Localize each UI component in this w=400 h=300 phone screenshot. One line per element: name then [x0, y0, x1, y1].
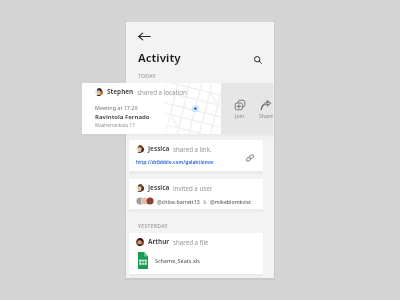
staticText: @chloe.barrett13 [157, 198, 200, 205]
button[interactable]: Join [230, 100, 250, 119]
staticText: shared a link. [173, 145, 212, 153]
staticText: & [203, 198, 207, 205]
button[interactable]: Back [138, 30, 151, 43]
button[interactable]: Stephen [82, 83, 221, 134]
staticText: @mikeblomkvist [210, 198, 252, 205]
button[interactable]: Copy link [245, 153, 255, 163]
staticText: Meeting at 17:20 [95, 104, 138, 111]
staticText: http://dribbble.com/galaktionov [136, 159, 214, 166]
staticText: Share [259, 112, 273, 119]
button[interactable]: Arthur [129, 233, 263, 274]
staticText: shared a file [173, 238, 209, 246]
staticText: invited a user [173, 184, 213, 192]
staticText: Activity [138, 50, 181, 65]
staticText: Arthur [148, 237, 170, 246]
button[interactable]: Jessica [129, 179, 263, 209]
button[interactable]: Share [256, 100, 276, 119]
button[interactable]: Search [253, 55, 263, 65]
staticText: Ravintola Fernado [95, 113, 150, 121]
staticText: Jessica [148, 144, 170, 153]
staticText: Jessica [148, 183, 170, 192]
staticText: Maaherrankatu 17 [95, 122, 135, 128]
staticText: Stephen [107, 87, 134, 96]
staticText: Scheme_Seats.xls [155, 257, 200, 264]
button[interactable]: Jessica [129, 140, 263, 171]
staticText: shared a location [137, 88, 187, 96]
staticText: YESTERDAY [138, 223, 168, 230]
staticText: TODAY [138, 73, 156, 80]
staticText: Join [235, 112, 245, 119]
